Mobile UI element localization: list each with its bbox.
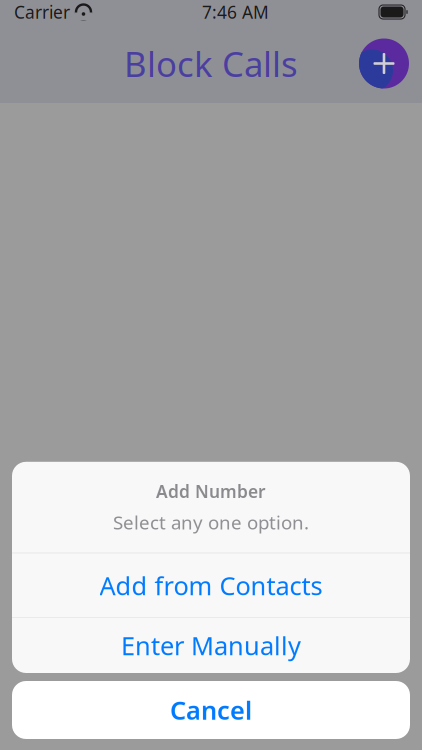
staticText: Select any one option. [113, 510, 309, 535]
staticText: Cancel [170, 693, 252, 727]
staticText: Carrier [14, 0, 70, 23]
staticText: Add from Contacts [99, 568, 322, 602]
button[interactable]: Add number [359, 38, 409, 88]
staticText: Add Number [156, 480, 266, 503]
button[interactable]: Add from Contacts [12, 553, 410, 617]
button[interactable]: Enter Manually [12, 618, 410, 673]
staticText: 7:46 AM [202, 0, 269, 23]
staticText: Enter Manually [121, 629, 301, 662]
button[interactable]: Cancel [12, 681, 410, 739]
staticText: Block Calls [124, 40, 298, 86]
